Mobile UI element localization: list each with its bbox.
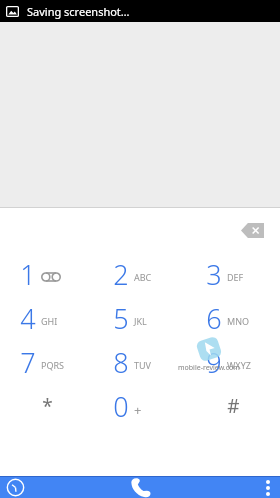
staticText: 2 bbox=[113, 256, 129, 293]
button[interactable]: 9 bbox=[187, 340, 280, 384]
staticText: mobile-review.com bbox=[178, 363, 240, 373]
staticText: TUV bbox=[134, 359, 151, 371]
staticText: * bbox=[42, 393, 53, 419]
button[interactable]: 8 bbox=[94, 340, 187, 384]
staticText: + bbox=[134, 401, 142, 419]
staticText: JKL bbox=[134, 315, 147, 327]
staticText: DEF bbox=[227, 271, 244, 283]
button[interactable]: * bbox=[0, 384, 94, 428]
staticText: 4 bbox=[20, 300, 36, 337]
button[interactable]: Recent calls bbox=[0, 477, 94, 498]
button[interactable]: 4 bbox=[0, 296, 94, 340]
staticText: 6 bbox=[206, 300, 222, 337]
button[interactable]: 0 bbox=[94, 384, 187, 428]
staticText: 5 bbox=[113, 300, 129, 337]
staticText: GHI bbox=[41, 315, 58, 327]
staticText: 1 bbox=[20, 256, 36, 293]
staticText: 7 bbox=[20, 344, 36, 381]
staticText: ABC bbox=[134, 271, 152, 283]
button[interactable]: Call bbox=[94, 477, 187, 498]
staticText: WXYZ bbox=[227, 359, 251, 371]
button[interactable]: Delete bbox=[230, 210, 274, 250]
staticText: Saving screenshot… bbox=[27, 4, 130, 19]
button[interactable]: 2 bbox=[94, 252, 187, 296]
button[interactable]: 1 bbox=[0, 252, 94, 296]
staticText: 0 bbox=[113, 388, 129, 425]
staticText: 9 bbox=[206, 344, 222, 381]
button[interactable]: More options bbox=[187, 477, 280, 498]
staticText: PQRS bbox=[41, 359, 65, 371]
staticText: 3 bbox=[206, 256, 222, 293]
button[interactable]: 5 bbox=[94, 296, 187, 340]
button[interactable]: 3 bbox=[187, 252, 280, 296]
button[interactable]: # bbox=[187, 384, 280, 428]
staticText: MNO bbox=[227, 315, 250, 327]
button[interactable]: 6 bbox=[187, 296, 280, 340]
staticText: # bbox=[227, 393, 240, 419]
staticText: 8 bbox=[113, 344, 129, 381]
button[interactable]: 7 bbox=[0, 340, 94, 384]
